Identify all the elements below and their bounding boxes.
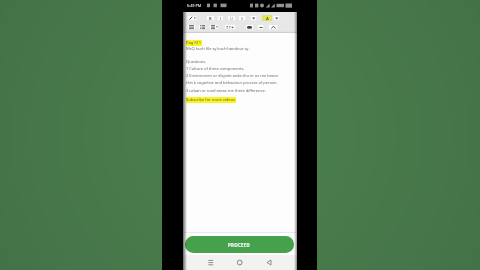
button[interactable] (245, 24, 254, 30)
button[interactable] (259, 255, 297, 270)
button[interactable]: A (262, 15, 272, 21)
staticText: Pag 511 (186, 40, 202, 46)
staticText: Questions. (186, 59, 207, 65)
staticText: S (241, 16, 244, 21)
button[interactable] (268, 24, 278, 30)
staticText: U (230, 16, 233, 21)
staticText: T (229, 26, 231, 30)
staticText: 2 Environmen or disjoint wola thu er os … (186, 73, 278, 79)
staticText: 6:49 PM (187, 3, 202, 8)
staticText: A (266, 16, 269, 21)
staticText: B (209, 16, 212, 21)
button[interactable]: B (206, 15, 215, 21)
button[interactable]: S (238, 15, 246, 21)
button[interactable] (209, 24, 219, 30)
button[interactable] (187, 15, 197, 21)
staticText: 3 urban or rural areas me three differen… (186, 88, 266, 94)
button[interactable] (198, 24, 206, 30)
staticText: PROCEED (228, 242, 251, 248)
staticText: I (220, 16, 222, 21)
button[interactable] (183, 255, 221, 270)
staticText: T (226, 25, 229, 30)
staticText: this k cognitive and behaviour process o… (186, 80, 278, 86)
button[interactable] (257, 24, 264, 30)
staticText: Subscribe for more videos. (186, 97, 236, 103)
button[interactable]: I (217, 15, 224, 21)
button[interactable]: PROCEED (185, 236, 294, 253)
button[interactable] (187, 24, 196, 30)
staticText: 1 Culture of three components. (186, 66, 245, 72)
button[interactable] (250, 15, 257, 21)
button[interactable] (221, 255, 259, 270)
button[interactable] (273, 15, 280, 21)
button[interactable]: T (224, 24, 236, 30)
button[interactable]: U (227, 15, 236, 21)
staticText: McQ kuch file sy kuch handout sy . (186, 46, 251, 52)
